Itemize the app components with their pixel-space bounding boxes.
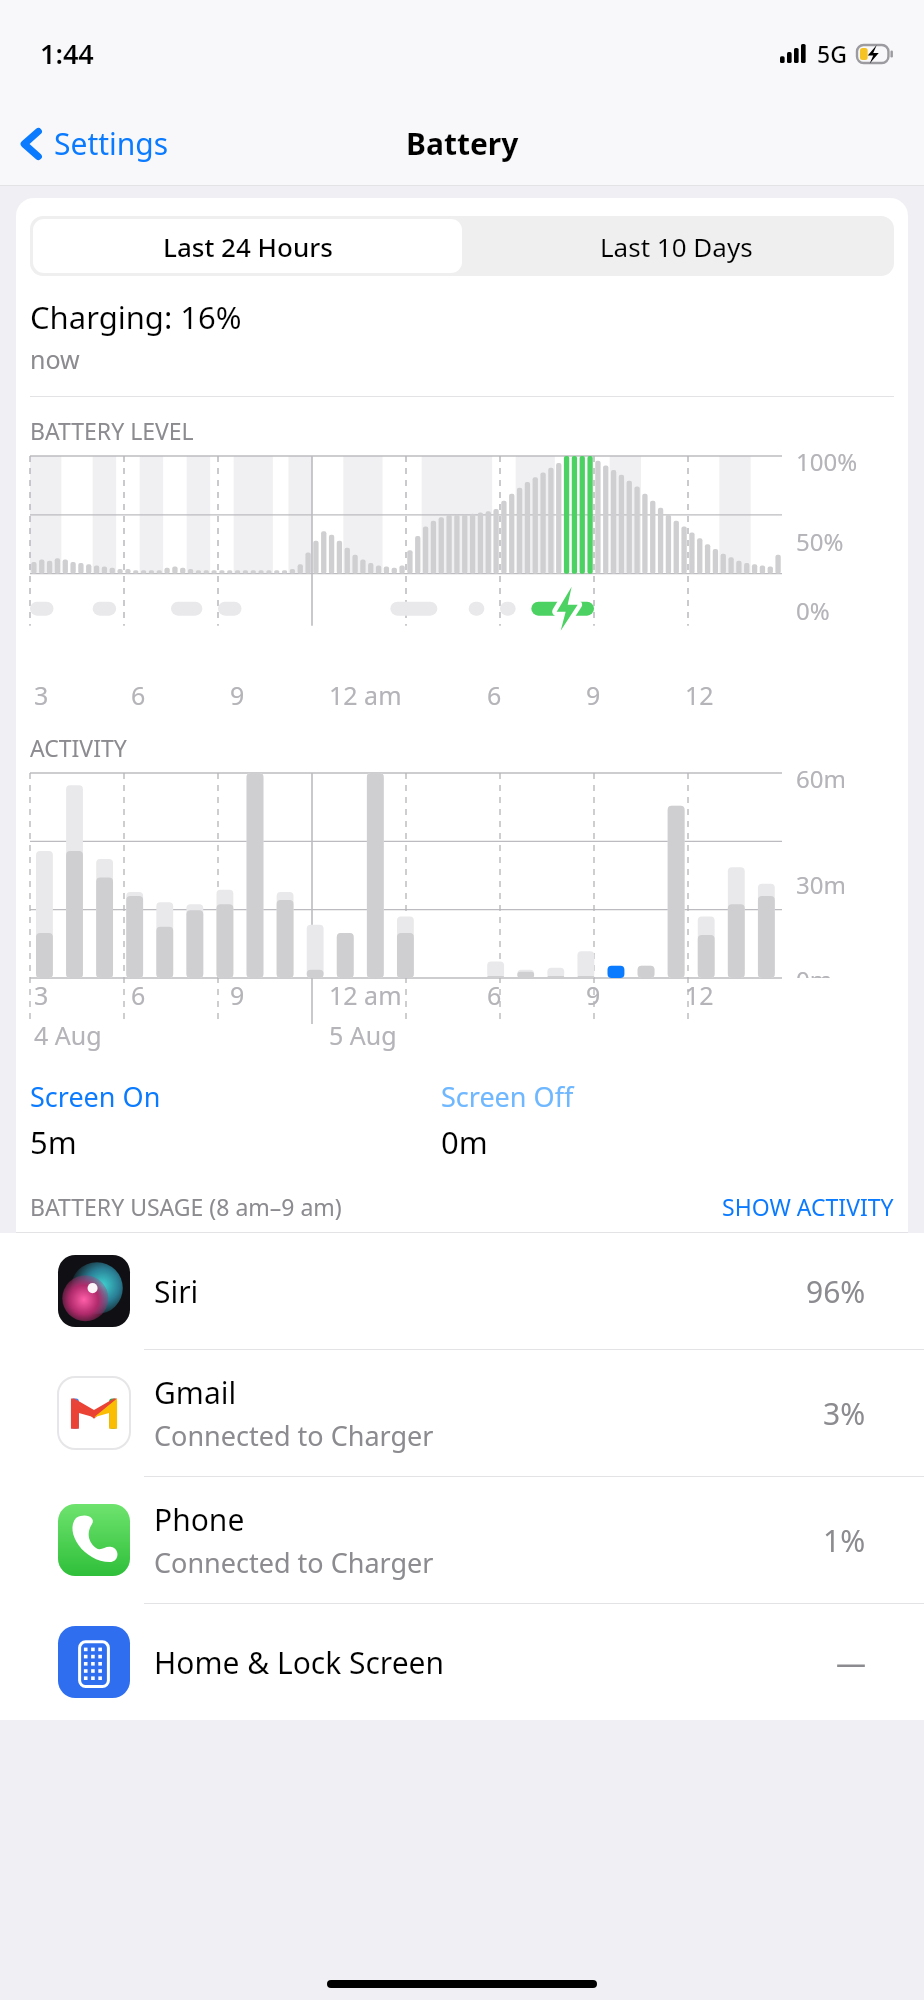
staticText: 12 xyxy=(685,678,714,712)
staticText: Last 10 Days xyxy=(600,229,753,264)
staticText: Connected to Charger xyxy=(154,1544,434,1581)
staticText: SHOW ACTIVITY xyxy=(722,1191,894,1222)
staticText: BATTERY LEVEL xyxy=(30,415,194,446)
button[interactable]: Screen On xyxy=(30,1078,161,1115)
staticText: 12 am xyxy=(329,678,402,712)
staticText: 9 xyxy=(586,978,601,1012)
staticText: BATTERY USAGE (8 am–9 am) xyxy=(30,1191,342,1222)
staticText: Gmail xyxy=(154,1372,237,1413)
staticText: Last 24 Hours xyxy=(163,229,333,264)
staticText: 1:44 xyxy=(40,35,94,72)
staticText: 6 xyxy=(131,978,146,1012)
button[interactable]: Settings xyxy=(16,113,173,174)
staticText: 9 xyxy=(230,978,245,1012)
staticText: 6 xyxy=(487,678,502,712)
staticText: 0m xyxy=(441,1121,488,1163)
staticText: 4 Aug xyxy=(34,1018,102,1052)
button[interactable]: Phone xyxy=(0,1477,924,1603)
staticText: Phone xyxy=(154,1499,245,1540)
staticText: Screen On xyxy=(30,1078,161,1115)
button[interactable]: Gmail xyxy=(0,1350,924,1476)
staticText: 100% xyxy=(796,445,858,478)
staticText: 1% xyxy=(823,1520,866,1561)
staticText: 12 xyxy=(685,978,714,1012)
staticText: 50% xyxy=(796,525,844,558)
staticText: 9 xyxy=(230,678,245,712)
staticText: 60m xyxy=(796,762,846,795)
staticText: ACTIVITY xyxy=(30,732,127,763)
button[interactable]: Siri xyxy=(0,1233,924,1349)
staticText: 3% xyxy=(823,1393,866,1434)
staticText: Connected to Charger xyxy=(154,1417,434,1454)
button[interactable]: Last 24 Hours xyxy=(33,219,462,273)
staticText: 30m xyxy=(796,868,846,901)
staticText: now xyxy=(30,342,80,376)
button[interactable]: SHOW ACTIVITY xyxy=(722,1191,894,1222)
staticText: Charging: 16% xyxy=(30,296,242,338)
button[interactable]: Screen Off xyxy=(441,1078,574,1115)
staticText: 6 xyxy=(487,978,502,1012)
staticText: 5 Aug xyxy=(329,1018,397,1052)
staticText: Battery xyxy=(406,123,519,164)
staticText: Screen Off xyxy=(441,1078,574,1115)
staticText: — xyxy=(836,1642,866,1683)
staticText: 0% xyxy=(796,594,830,627)
staticText: Settings xyxy=(54,123,169,164)
staticText: 3 xyxy=(34,678,49,712)
staticText: 0m xyxy=(796,963,833,978)
staticText: 3 xyxy=(34,978,49,1012)
button[interactable]: Last 10 Days xyxy=(462,219,891,273)
staticText: 5m xyxy=(30,1121,77,1163)
staticText: 5G xyxy=(817,38,847,69)
button[interactable]: Home & Lock Screen xyxy=(0,1604,924,1720)
staticText: Home & Lock Screen xyxy=(154,1642,445,1683)
staticText: 96% xyxy=(806,1271,866,1312)
staticText: Siri xyxy=(154,1271,199,1312)
staticText: 6 xyxy=(131,678,146,712)
staticText: 9 xyxy=(586,678,601,712)
staticText: 12 am xyxy=(329,978,402,1012)
